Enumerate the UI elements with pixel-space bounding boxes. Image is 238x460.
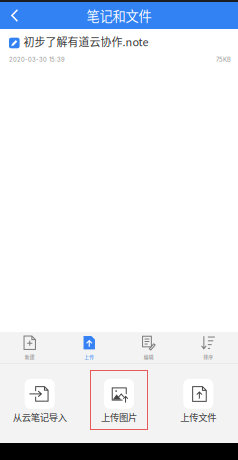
button[interactable]: 新建	[0, 332, 59, 363]
button[interactable]: 编辑	[119, 332, 178, 363]
button[interactable]: 上传	[59, 332, 119, 363]
button[interactable]: 上传文件	[162, 379, 234, 423]
staticText: 编辑	[144, 353, 154, 360]
staticText: 新建	[25, 353, 35, 360]
button[interactable]: Back	[0, 2, 28, 29]
staticText: 2020-03-30 15:39	[9, 56, 65, 63]
button[interactable]: 排序	[178, 332, 238, 363]
staticText: 初步了解有道云协作.note	[24, 34, 149, 49]
staticText: 笔记和文件	[86, 6, 151, 25]
staticText: 上传文件	[180, 410, 216, 424]
staticText: 排序	[203, 353, 213, 360]
staticText: 75KB	[216, 56, 231, 63]
button[interactable]: 从云笔记导入	[4, 379, 76, 423]
staticText: 上传	[84, 353, 94, 360]
button[interactable]: 初步了解有道云协作.note	[0, 29, 238, 67]
staticText: 上传图片	[101, 410, 137, 424]
button[interactable]: 上传图片	[83, 379, 155, 423]
staticText: 从云笔记导入	[13, 410, 67, 424]
